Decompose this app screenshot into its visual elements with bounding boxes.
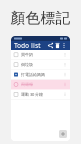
staticText: 打電話給媽媽: [21, 72, 45, 77]
button[interactable]: 運動 30 分鐘: [11, 90, 70, 99]
button[interactable]: More options: [61, 41, 67, 49]
button[interactable]: 寫週報: [11, 80, 70, 90]
button[interactable]: 打電話給媽媽: [11, 70, 70, 80]
staticText: 寫週報: [21, 82, 33, 87]
button[interactable]: Add task: [58, 129, 68, 139]
staticText: 顏色標記: [10, 9, 70, 27]
staticText: 運動 30 分鐘: [21, 92, 43, 97]
staticText: 倒垃圾: [21, 62, 33, 67]
button[interactable]: Delete: [54, 41, 61, 49]
button[interactable]: 買牛奶: [11, 50, 70, 60]
staticText: Todo list: [14, 41, 41, 50]
button[interactable]: 倒垃圾: [11, 60, 70, 70]
staticText: 買牛奶: [21, 52, 33, 57]
button[interactable]: Share: [47, 41, 54, 49]
